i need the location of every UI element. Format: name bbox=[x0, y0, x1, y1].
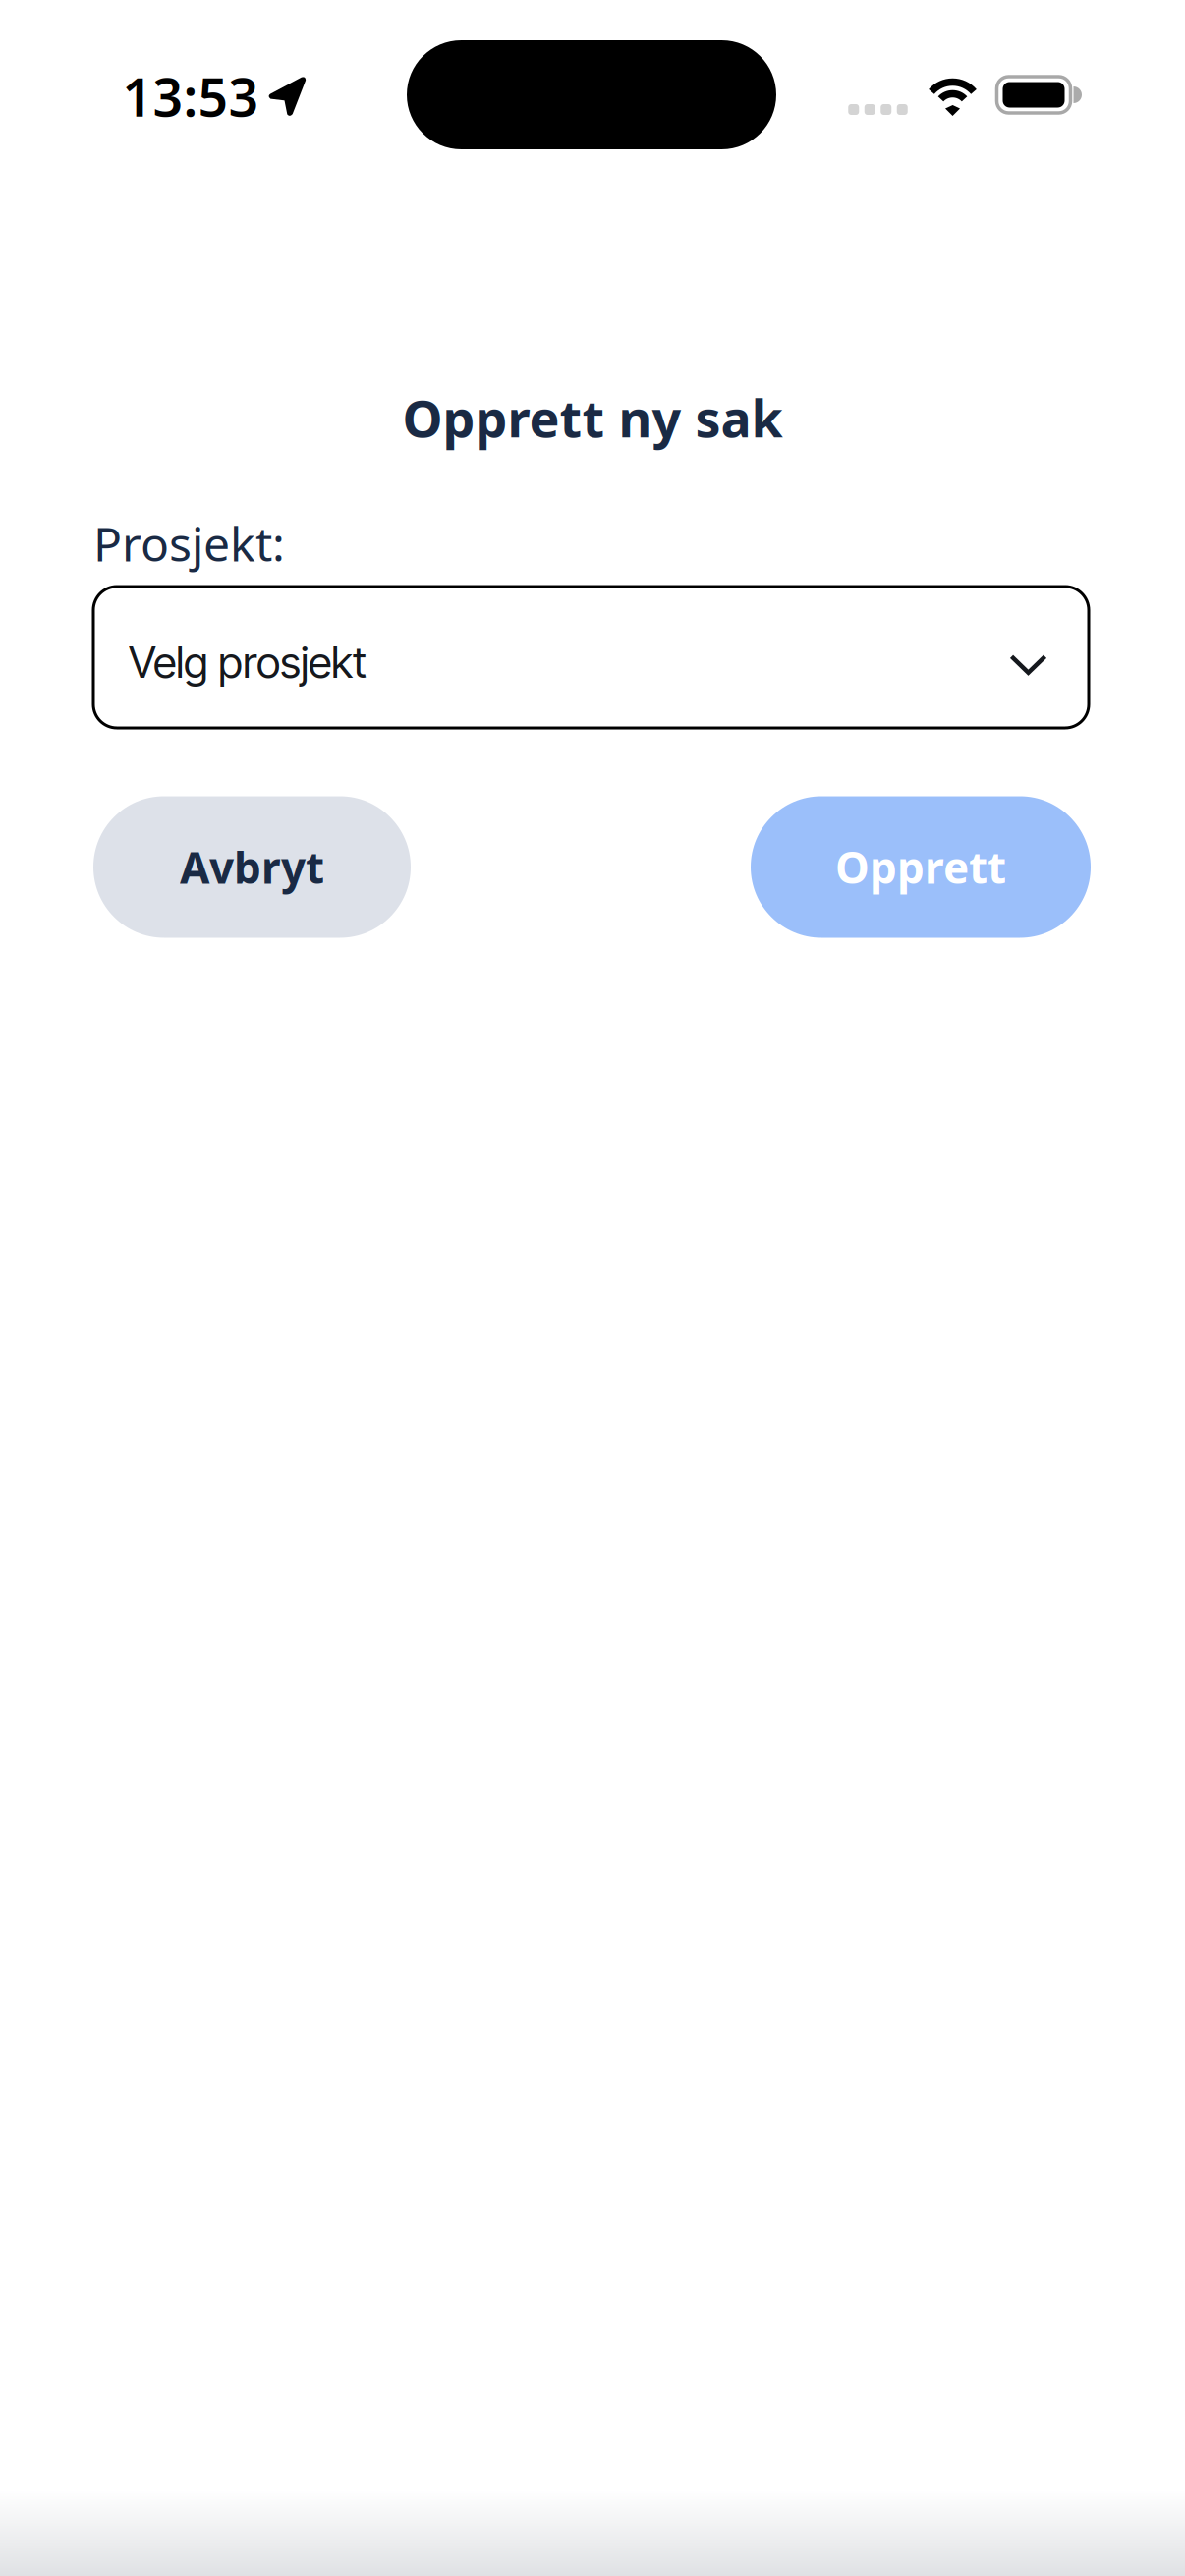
staticText: Opprett bbox=[835, 838, 1006, 896]
staticText: Velg prosjekt bbox=[129, 636, 367, 688]
staticText: Opprett ny sak bbox=[402, 384, 783, 452]
button[interactable]: Velg prosjekt bbox=[93, 587, 1089, 728]
button[interactable]: Opprett bbox=[751, 796, 1091, 938]
staticText: Prosjekt: bbox=[93, 512, 285, 575]
staticText: Avbryt bbox=[180, 838, 324, 896]
staticText: 13:53 bbox=[122, 62, 259, 131]
button[interactable]: Avbryt bbox=[93, 796, 411, 938]
